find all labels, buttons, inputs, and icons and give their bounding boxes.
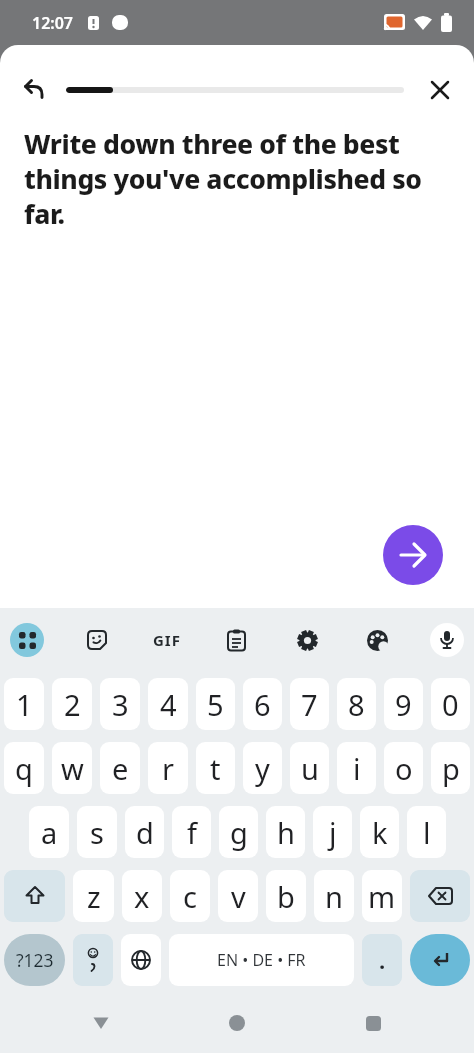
staticText: u xyxy=(301,749,319,788)
staticText: GIF xyxy=(153,630,181,650)
staticText: e xyxy=(112,749,129,788)
button[interactable] xyxy=(354,617,400,663)
staticText: 12:07 xyxy=(32,12,74,34)
staticText: 5 xyxy=(207,685,224,724)
button[interactable] xyxy=(214,617,260,663)
button[interactable]: 8 xyxy=(337,678,376,730)
staticText: k xyxy=(372,813,388,852)
staticText: 2 xyxy=(64,685,81,724)
staticText: 3 xyxy=(112,685,129,724)
button[interactable]: j xyxy=(313,806,352,858)
button[interactable]: . xyxy=(362,934,402,986)
button[interactable] xyxy=(426,76,454,104)
button[interactable] xyxy=(284,617,330,663)
button[interactable]: GIF xyxy=(144,617,190,663)
staticText: b xyxy=(277,877,295,916)
staticText: a xyxy=(41,813,58,852)
staticText: w xyxy=(61,749,84,788)
staticText: 4 xyxy=(160,685,177,724)
staticText: j xyxy=(329,813,337,852)
button[interactable]: v xyxy=(218,870,258,922)
button[interactable]: EN • DE • FR xyxy=(169,934,354,986)
button[interactable] xyxy=(424,617,470,663)
staticText: r xyxy=(162,749,174,788)
button[interactable]: b xyxy=(266,870,306,922)
button[interactable] xyxy=(73,934,113,986)
button[interactable]: t xyxy=(196,742,235,794)
button[interactable] xyxy=(4,617,50,663)
button[interactable]: y xyxy=(243,742,282,794)
staticText: x xyxy=(134,877,150,916)
button[interactable]: 0 xyxy=(431,678,470,730)
button[interactable] xyxy=(410,870,470,922)
staticText: p xyxy=(442,749,460,788)
button[interactable]: 1 xyxy=(4,678,44,730)
staticText: i xyxy=(353,749,361,788)
button[interactable]: i xyxy=(337,742,376,794)
button[interactable]: q xyxy=(4,742,44,794)
staticText: EN • DE • FR xyxy=(217,949,306,971)
staticText: g xyxy=(230,813,248,852)
staticText: h xyxy=(277,813,295,852)
button[interactable]: a xyxy=(29,806,69,858)
staticText: o xyxy=(395,749,413,788)
button[interactable]: s xyxy=(77,806,117,858)
button[interactable] xyxy=(4,870,65,922)
button[interactable]: 4 xyxy=(148,678,188,730)
button[interactable]: x xyxy=(122,870,162,922)
button[interactable]: 2 xyxy=(52,678,92,730)
button[interactable]: 9 xyxy=(384,678,423,730)
button[interactable]: p xyxy=(431,742,470,794)
button[interactable]: m xyxy=(362,870,402,922)
button[interactable]: 3 xyxy=(100,678,140,730)
button[interactable]: z xyxy=(73,870,114,922)
button[interactable]: r xyxy=(148,742,188,794)
staticText: ?123 xyxy=(16,948,54,972)
staticText: v xyxy=(231,877,246,916)
staticText: z xyxy=(87,877,101,916)
staticText: q xyxy=(15,749,33,788)
button[interactable]: f xyxy=(172,806,211,858)
button[interactable]: h xyxy=(266,806,305,858)
button[interactable] xyxy=(360,1010,386,1036)
button[interactable]: c xyxy=(170,870,210,922)
button[interactable]: 6 xyxy=(243,678,282,730)
staticText: 0 xyxy=(442,685,459,724)
staticText: t xyxy=(210,749,221,788)
button[interactable]: 5 xyxy=(196,678,235,730)
button[interactable]: l xyxy=(407,806,446,858)
button[interactable] xyxy=(20,76,48,104)
staticText: f xyxy=(187,813,197,852)
button[interactable]: k xyxy=(360,806,399,858)
button[interactable]: g xyxy=(219,806,258,858)
staticText: s xyxy=(90,813,104,852)
button[interactable] xyxy=(88,1010,114,1036)
staticText: 9 xyxy=(395,685,412,724)
staticText: d xyxy=(136,813,154,852)
staticText: y xyxy=(255,749,270,788)
staticText: 8 xyxy=(348,685,365,724)
button[interactable]: d xyxy=(125,806,164,858)
staticText: c xyxy=(183,877,197,916)
button[interactable]: e xyxy=(100,742,140,794)
button[interactable] xyxy=(410,934,470,986)
button[interactable]: n xyxy=(314,870,354,922)
staticText: n xyxy=(325,877,343,916)
staticText: 6 xyxy=(254,685,271,724)
staticText: 7 xyxy=(301,685,318,724)
button[interactable]: u xyxy=(290,742,329,794)
button[interactable] xyxy=(224,1010,250,1036)
button[interactable]: ?123 xyxy=(4,934,65,986)
staticText: Write down three of the best things you'… xyxy=(24,126,422,232)
staticText: 1 xyxy=(16,685,33,724)
button[interactable]: 7 xyxy=(290,678,329,730)
button[interactable] xyxy=(121,934,161,986)
button[interactable]: o xyxy=(384,742,423,794)
staticText: . xyxy=(379,945,386,975)
button[interactable] xyxy=(74,617,120,663)
staticText: m xyxy=(368,877,396,916)
staticText: l xyxy=(423,813,431,852)
button[interactable] xyxy=(383,525,443,585)
button[interactable]: w xyxy=(52,742,92,794)
